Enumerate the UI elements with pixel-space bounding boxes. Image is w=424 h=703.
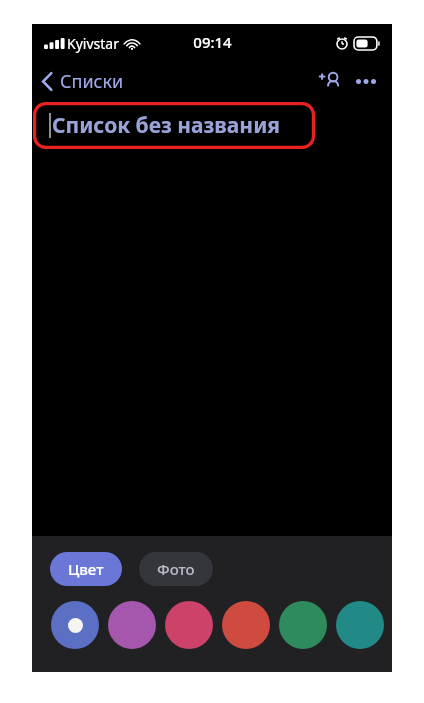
staticText: Цвет (68, 559, 104, 579)
button[interactable]: Color 3 (165, 601, 213, 649)
button[interactable]: Фото (139, 552, 213, 586)
staticText: Списки (60, 69, 124, 94)
button[interactable]: Color 1 (51, 601, 99, 649)
button[interactable]: Color 6 (336, 601, 384, 649)
button[interactable]: Add person (312, 63, 348, 99)
button[interactable]: Цвет (50, 552, 122, 586)
button[interactable]: Color 2 (108, 601, 156, 649)
button[interactable]: More options (348, 63, 384, 99)
staticText: Kyivstar (67, 34, 119, 53)
button[interactable]: Списки (32, 65, 132, 98)
staticText: Фото (157, 559, 195, 579)
button[interactable]: Color 4 (222, 601, 270, 649)
staticText: Список без названия (52, 111, 280, 140)
button[interactable]: Список без названия (33, 102, 315, 149)
staticText: 09:14 (193, 32, 232, 52)
button[interactable]: Color 5 (279, 601, 327, 649)
